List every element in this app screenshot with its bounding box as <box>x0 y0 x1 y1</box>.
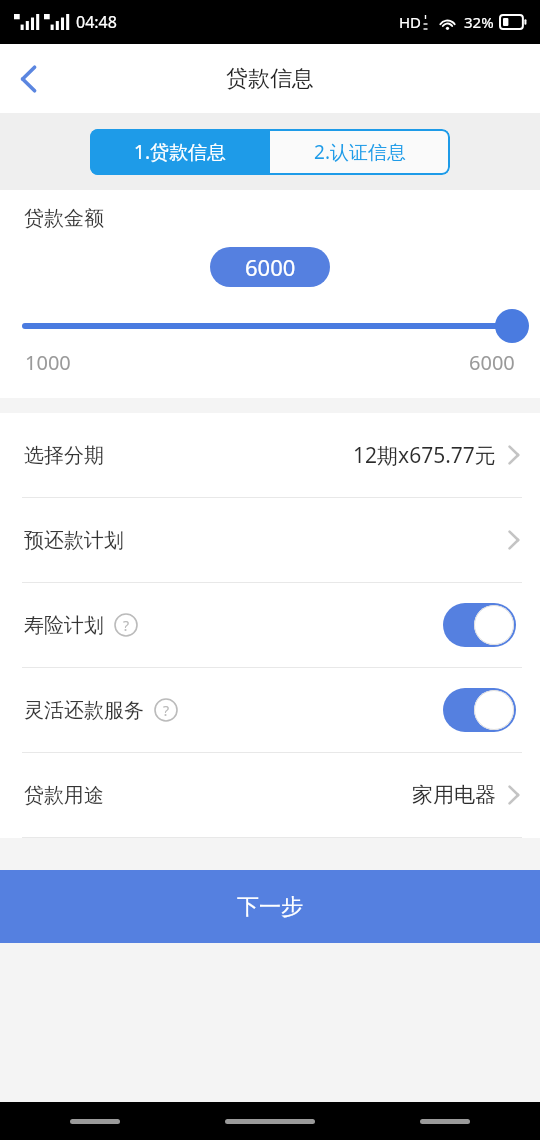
staticText: 寿险计划 <box>24 613 104 638</box>
staticText: HD <box>399 12 422 32</box>
staticText: 贷款信息 <box>226 65 314 93</box>
staticText: 04:48 <box>76 11 117 33</box>
staticText: 贷款金额 <box>24 206 104 231</box>
button[interactable]: 选择分期 <box>0 413 540 497</box>
button[interactable]: Navigation <box>420 1119 470 1124</box>
staticText: 12期x675.77元 <box>353 441 496 470</box>
staticText: 家用电器 <box>412 782 496 808</box>
button[interactable]: Navigation <box>225 1119 315 1124</box>
staticText: 2.认证信息 <box>314 139 406 165</box>
button[interactable]: 寿险计划 <box>0 583 540 667</box>
button[interactable]: 预还款计划 <box>0 498 540 582</box>
staticText: 1.贷款信息 <box>134 139 226 165</box>
staticText: 下一步 <box>237 893 303 921</box>
button[interactable]: Toggle 灵活还款服务 <box>443 688 516 732</box>
staticText: ? <box>163 701 170 720</box>
button[interactable]: 下一步 <box>0 870 540 943</box>
button[interactable]: Toggle 寿险计划 <box>443 603 516 647</box>
staticText: 6000 <box>469 349 515 376</box>
staticText: 32% <box>464 12 494 32</box>
staticText: 选择分期 <box>24 443 104 468</box>
staticText: 灵活还款服务 <box>24 698 144 723</box>
staticText: 贷款用途 <box>24 783 104 808</box>
button[interactable]: Navigation <box>70 1119 120 1124</box>
button[interactable]: 1.贷款信息 <box>90 129 270 175</box>
staticText: 1000 <box>25 349 71 376</box>
staticText: 预还款计划 <box>24 528 124 553</box>
button[interactable]: 灵活还款服务 <box>0 668 540 752</box>
button[interactable]: 2.认证信息 <box>270 129 450 175</box>
staticText: ? <box>123 616 130 635</box>
button[interactable]: Back <box>0 44 58 113</box>
staticText: 6000 <box>245 252 296 282</box>
button[interactable]: 贷款用途 <box>0 753 540 837</box>
